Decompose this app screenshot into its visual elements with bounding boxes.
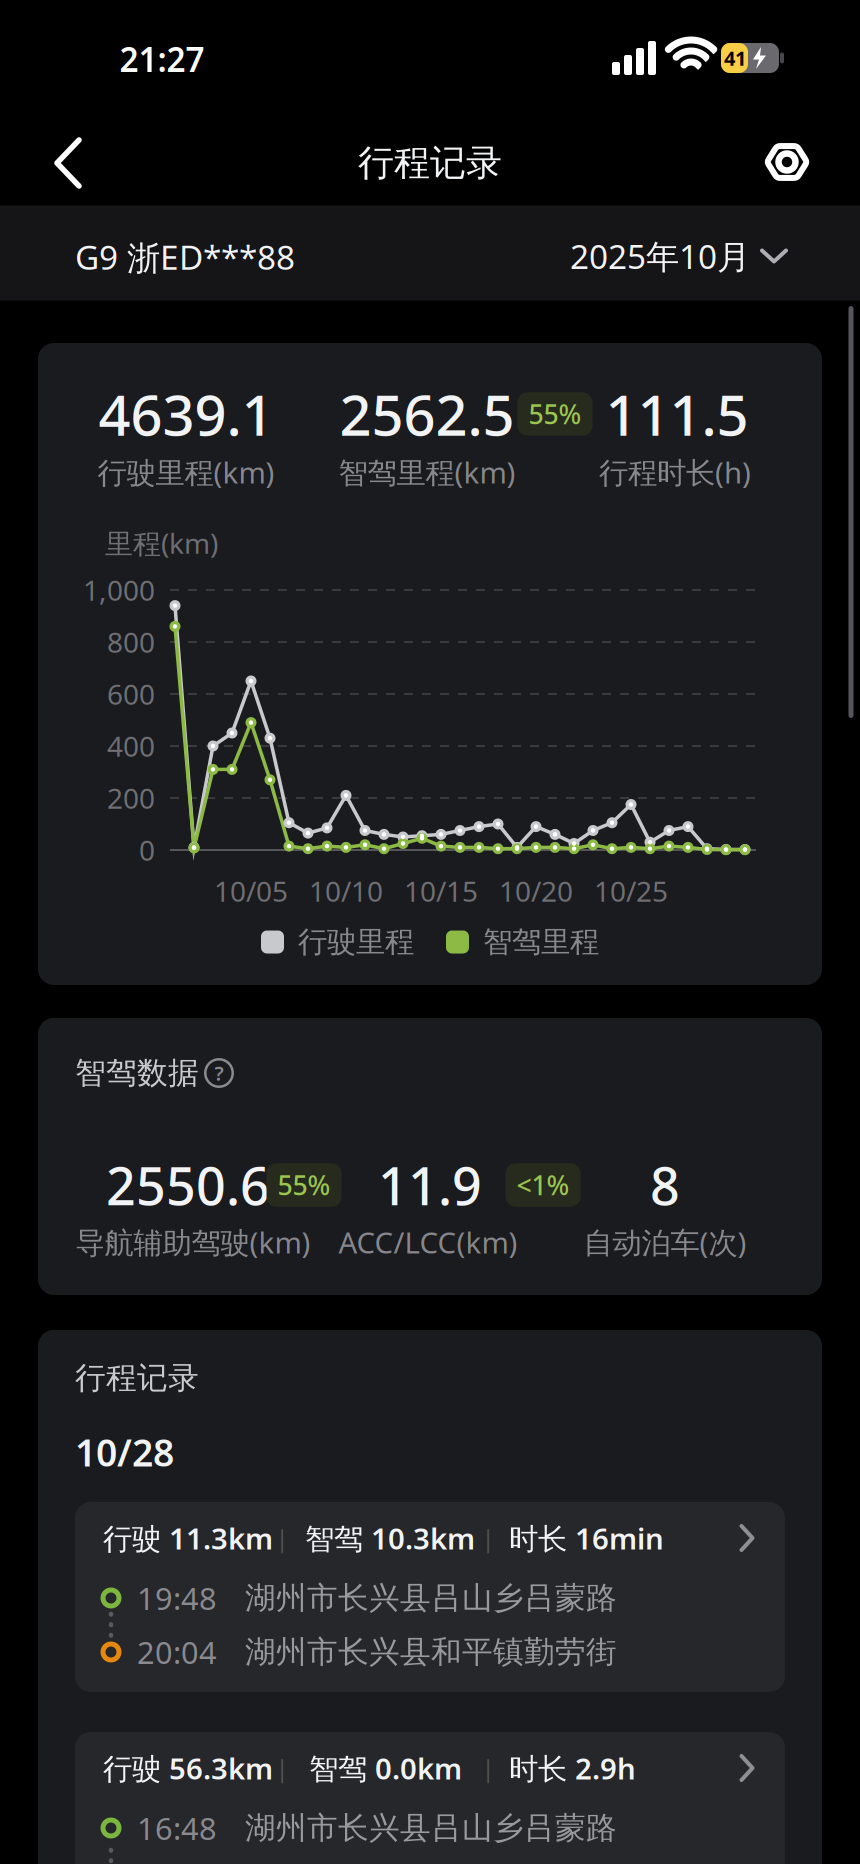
button[interactable]: 帮助	[197, 1051, 241, 1095]
staticText: 时长 2.9h	[509, 1748, 636, 1787]
button[interactable]: 设置	[755, 130, 819, 194]
staticText: 智驾里程(km)	[338, 452, 515, 491]
staticText: 10/05	[214, 872, 288, 910]
staticText: 200	[107, 779, 155, 817]
staticText: 时长 16min	[509, 1518, 664, 1557]
staticText: 55%	[277, 1167, 330, 1203]
staticText: 导航辅助驾驶(km)	[75, 1222, 310, 1261]
staticText: 湖州市长兴县和平镇勤劳街	[245, 1633, 617, 1671]
staticText: 10/15	[404, 872, 478, 910]
staticText: 行驶 11.3km	[103, 1518, 273, 1557]
button[interactable]: 2025年10月	[570, 214, 786, 298]
staticText: 10/20	[499, 872, 573, 910]
staticText: 19:48	[137, 1578, 217, 1618]
staticText: 湖州市长兴县吕山乡吕蒙路	[245, 1579, 617, 1617]
staticText: 自动泊车(次)	[583, 1222, 746, 1261]
staticText: 600	[107, 675, 155, 713]
staticText: 400	[107, 727, 155, 765]
staticText: 111.5	[605, 377, 748, 451]
staticText: 湖州市长兴县吕山乡吕蒙路	[245, 1809, 617, 1847]
button[interactable]: 行驶 56.3km	[75, 1732, 785, 1864]
staticText: 智驾数据	[75, 1054, 199, 1092]
staticText: 行驶里程(km)	[97, 452, 274, 491]
staticText: 行程记录	[75, 1359, 199, 1397]
staticText: 行驶里程	[298, 924, 414, 960]
staticText: 20:04	[137, 1632, 217, 1672]
button[interactable]: 行驶 11.3km	[75, 1502, 785, 1692]
staticText: 0	[139, 831, 155, 869]
button[interactable]: 返回	[33, 128, 103, 198]
staticText: |	[481, 1522, 494, 1554]
staticText: 里程(km)	[105, 524, 218, 562]
staticText: 2550.6	[106, 1150, 270, 1220]
staticText: 行程时长(h)	[599, 452, 751, 491]
staticText: 8	[650, 1150, 680, 1220]
staticText: 2562.5	[339, 377, 514, 451]
staticText: 智驾 0.0km	[309, 1748, 462, 1787]
staticText: |	[481, 1752, 494, 1784]
staticText: <1%	[516, 1167, 569, 1203]
staticText: 55%	[528, 396, 581, 432]
staticText: ?	[214, 1060, 223, 1086]
staticText: 行驶 56.3km	[103, 1748, 273, 1787]
staticText: 2025年10月	[570, 234, 750, 278]
staticText: 10/10	[309, 872, 383, 910]
staticText: |	[275, 1752, 288, 1784]
staticText: G9 浙ED***88	[75, 235, 295, 279]
staticText: ACC/LCC(km)	[338, 1222, 517, 1261]
staticText: 21:27	[119, 37, 204, 81]
staticText: 41	[724, 45, 746, 71]
staticText: 10/25	[594, 872, 668, 910]
staticText: 智驾 10.3km	[305, 1518, 475, 1557]
button[interactable]: G9 浙ED***88	[0, 0, 860, 95]
staticText: 16:48	[137, 1808, 217, 1848]
staticText: 10/28	[75, 1427, 174, 1477]
staticText: 1,000	[83, 571, 155, 609]
staticText: 800	[107, 623, 155, 661]
staticText: 11.9	[378, 1150, 482, 1220]
staticText: |	[275, 1522, 288, 1554]
staticText: 智驾里程	[483, 924, 599, 960]
staticText: 行程记录	[358, 141, 502, 185]
staticText: 4639.1	[98, 377, 273, 451]
